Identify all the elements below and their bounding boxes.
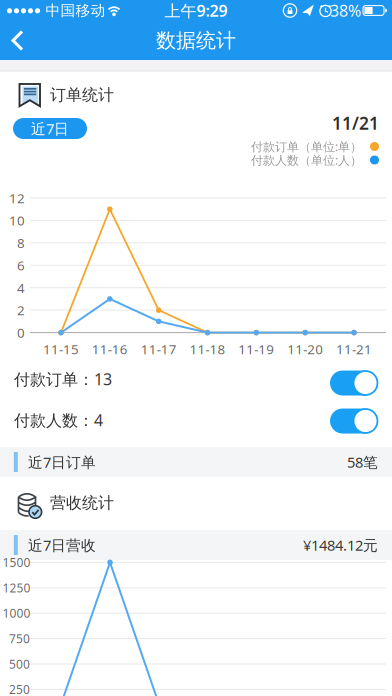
staticText: 38% bbox=[330, 0, 361, 21]
staticText: 中国移动 bbox=[45, 1, 105, 19]
staticText: 11-16 bbox=[92, 340, 128, 358]
staticText: 11-17 bbox=[141, 340, 177, 358]
staticText: 付款人数：4 bbox=[14, 409, 103, 431]
staticText: 11-19 bbox=[238, 340, 274, 358]
button[interactable]: 近7日 bbox=[13, 118, 87, 139]
button[interactable]: 返回 bbox=[0, 0, 36, 40]
staticText: 11-21 bbox=[336, 340, 372, 358]
staticText: 11-20 bbox=[287, 340, 323, 358]
staticText: 付款订单：13 bbox=[14, 368, 112, 390]
staticText: 付款订单（单位:单） bbox=[251, 138, 362, 154]
staticText: 8 bbox=[17, 234, 25, 252]
staticText: 近7日营收 bbox=[28, 535, 96, 555]
staticText: 1500 bbox=[2, 554, 30, 570]
staticText: 0 bbox=[17, 324, 25, 341]
staticText: 订单统计 bbox=[50, 85, 114, 105]
staticText: 1000 bbox=[2, 605, 30, 621]
staticText: ¥1484.12元 bbox=[303, 535, 378, 555]
staticText: 近7日 bbox=[31, 119, 69, 138]
staticText: 500 bbox=[9, 656, 30, 672]
staticText: 10 bbox=[9, 212, 25, 229]
staticText: 11-15 bbox=[43, 340, 79, 358]
button[interactable]: 付款人数 bbox=[330, 408, 377, 433]
staticText: 6 bbox=[17, 256, 25, 274]
staticText: 1250 bbox=[2, 580, 30, 596]
staticText: 11-18 bbox=[189, 340, 225, 358]
staticText: 上午9:29 bbox=[164, 0, 227, 21]
staticText: 58笔 bbox=[347, 452, 378, 472]
staticText: 12 bbox=[9, 189, 25, 207]
staticText: 11/21 bbox=[332, 111, 379, 134]
staticText: 营收统计 bbox=[50, 493, 114, 513]
staticText: 250 bbox=[9, 681, 30, 696]
staticText: 4 bbox=[17, 279, 25, 297]
button[interactable]: 付款订单 bbox=[330, 370, 377, 395]
staticText: 750 bbox=[9, 631, 30, 646]
staticText: 数据统计 bbox=[156, 28, 236, 53]
staticText: 2 bbox=[17, 301, 25, 319]
staticText: 付款人数（单位:人） bbox=[251, 152, 362, 168]
staticText: 近7日订单 bbox=[28, 452, 96, 472]
